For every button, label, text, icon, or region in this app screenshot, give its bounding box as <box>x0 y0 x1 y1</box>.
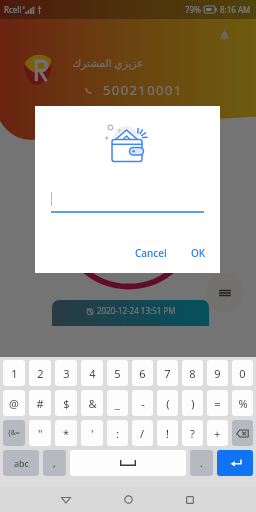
staticText: : <box>116 426 119 441</box>
staticText: - <box>141 396 145 411</box>
button[interactable]: 5 <box>107 360 128 386</box>
button[interactable]: @ <box>3 390 25 416</box>
staticText: ( <box>166 396 170 411</box>
staticText: & <box>88 396 97 411</box>
button[interactable]: Recents <box>161 487 219 512</box>
staticText: % <box>238 396 248 411</box>
staticText: 7 <box>164 366 171 381</box>
staticText: Cancel <box>135 246 167 260</box>
button[interactable]: Home <box>99 487 157 512</box>
staticText: 5 <box>114 366 121 381</box>
staticText: 3 <box>63 366 70 381</box>
staticText: @ <box>9 396 19 411</box>
button[interactable]: Backspace <box>232 420 253 446</box>
button[interactable]: 4 <box>81 360 103 386</box>
button[interactable]: * <box>55 420 77 446</box>
button[interactable]: 2 <box>29 360 51 386</box>
button[interactable]: 1 <box>3 360 25 386</box>
staticText: ? <box>190 426 195 441</box>
staticText: . <box>200 456 203 470</box>
staticText: 2020-12-24 13:51 PM <box>97 305 176 316</box>
button[interactable]: _ <box>107 390 128 416</box>
button[interactable]: Cancel <box>129 242 173 264</box>
button[interactable]: Back <box>37 487 95 512</box>
button[interactable]: ) <box>182 390 203 416</box>
button[interactable]: $ <box>55 390 77 416</box>
staticText: * <box>63 426 70 441</box>
button[interactable]: Notifications <box>216 28 232 44</box>
staticText: 4 <box>89 366 96 381</box>
button[interactable]: + <box>207 420 228 446</box>
staticText: 500210001 <box>103 81 183 99</box>
staticText: 9 <box>214 366 221 381</box>
button[interactable]: , <box>43 450 66 476</box>
button[interactable]: = <box>207 390 228 416</box>
staticText: + <box>214 426 221 441</box>
staticText: $ <box>63 396 70 411</box>
staticText: 6 <box>139 366 146 381</box>
button[interactable]: Menu <box>206 274 244 312</box>
button[interactable]: - <box>132 390 153 416</box>
staticText: , <box>53 456 56 470</box>
staticText: _ <box>115 396 120 411</box>
staticText: ! <box>166 426 169 441</box>
staticText: {&= <box>8 428 20 438</box>
button[interactable]: OK <box>185 242 212 264</box>
staticText: Rcell <box>4 4 22 15</box>
button[interactable]: Space <box>70 450 186 476</box>
button[interactable]: 6 <box>132 360 153 386</box>
button[interactable]: 9 <box>207 360 228 386</box>
button[interactable]: . <box>190 450 213 476</box>
button[interactable]: ' <box>81 420 103 446</box>
staticText: 0 <box>239 366 246 381</box>
button[interactable]: % <box>232 390 253 416</box>
button[interactable]: " <box>29 420 51 446</box>
button[interactable]: 0 <box>232 360 253 386</box>
staticText: عزيزي المشترك <box>58 56 158 70</box>
staticText: abc <box>14 457 29 469</box>
button[interactable]: # <box>29 390 51 416</box>
button[interactable]: & <box>81 390 103 416</box>
staticText: " <box>38 426 43 441</box>
staticText: OK <box>191 246 206 260</box>
staticText: 8:16 AM <box>220 4 251 15</box>
button[interactable]: ! <box>157 420 178 446</box>
button[interactable]: abc <box>3 450 39 476</box>
button[interactable]: {&= <box>3 420 25 446</box>
button[interactable]: 7 <box>157 360 178 386</box>
button[interactable]: Enter <box>217 450 253 476</box>
staticText: 8 <box>189 366 196 381</box>
button[interactable]: / <box>132 420 153 446</box>
staticText: 2 <box>37 366 44 381</box>
staticText: # <box>36 396 44 411</box>
button[interactable]: ? <box>182 420 203 446</box>
button[interactable]: 8 <box>182 360 203 386</box>
staticText: / <box>140 426 145 441</box>
button[interactable]: ( <box>157 390 178 416</box>
button[interactable]: 3 <box>55 360 77 386</box>
staticText: 1 <box>11 366 18 381</box>
staticText: ' <box>91 426 94 441</box>
staticText: 79% <box>185 4 201 15</box>
button[interactable]: : <box>107 420 128 446</box>
staticText: ) <box>191 396 195 411</box>
staticText: = <box>214 396 221 411</box>
